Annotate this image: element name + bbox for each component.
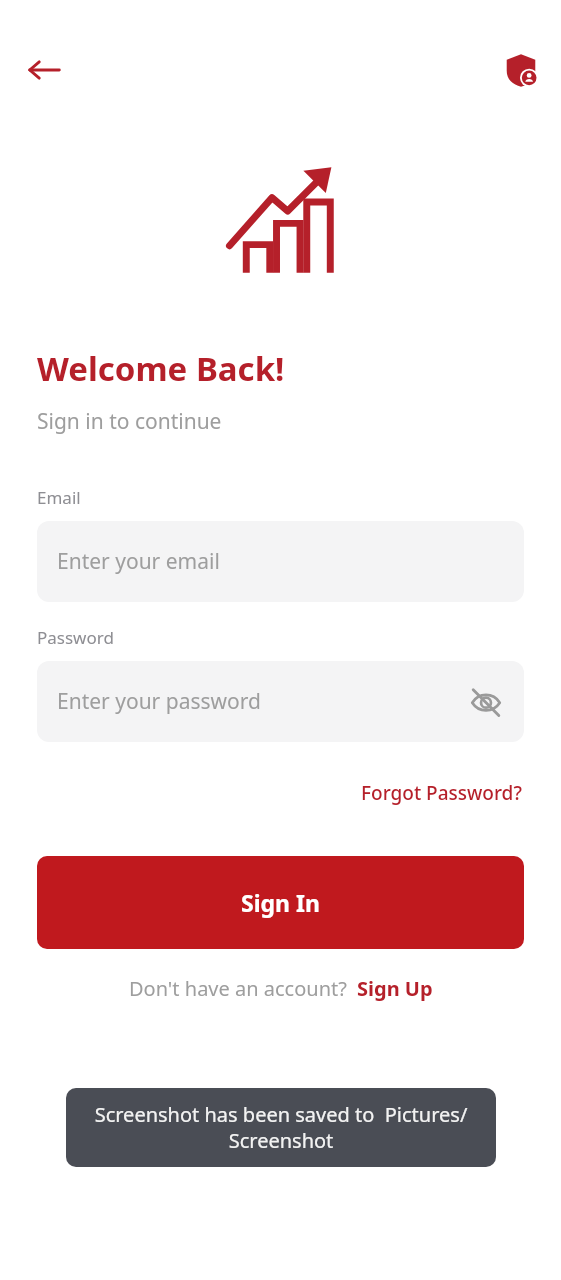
button[interactable]: Back [16, 42, 72, 98]
staticText: Email [37, 486, 81, 509]
staticText: Sign Up [357, 975, 433, 1002]
staticText: Enter your email [57, 547, 220, 576]
button[interactable]: Enter your password [37, 661, 524, 742]
button[interactable]: Enter your email [37, 521, 524, 602]
button[interactable]: Account security [495, 44, 547, 96]
staticText: Enter your password [57, 687, 261, 716]
staticText: Sign in to continue [37, 407, 222, 436]
button[interactable]: Sign Up [357, 975, 433, 1002]
button[interactable]: Show password [462, 678, 510, 726]
button[interactable]: Forgot Password? [359, 772, 524, 814]
button[interactable]: Sign In [37, 856, 524, 949]
staticText: Screenshot has been saved to Pictures/Sc… [80, 1101, 482, 1154]
staticText: Password [37, 626, 114, 649]
staticText: Welcome Back! [37, 346, 285, 391]
staticText: Forgot Password? [361, 780, 522, 806]
staticText: Don't have an account? [129, 975, 347, 1002]
staticText: Sign In [241, 887, 320, 918]
